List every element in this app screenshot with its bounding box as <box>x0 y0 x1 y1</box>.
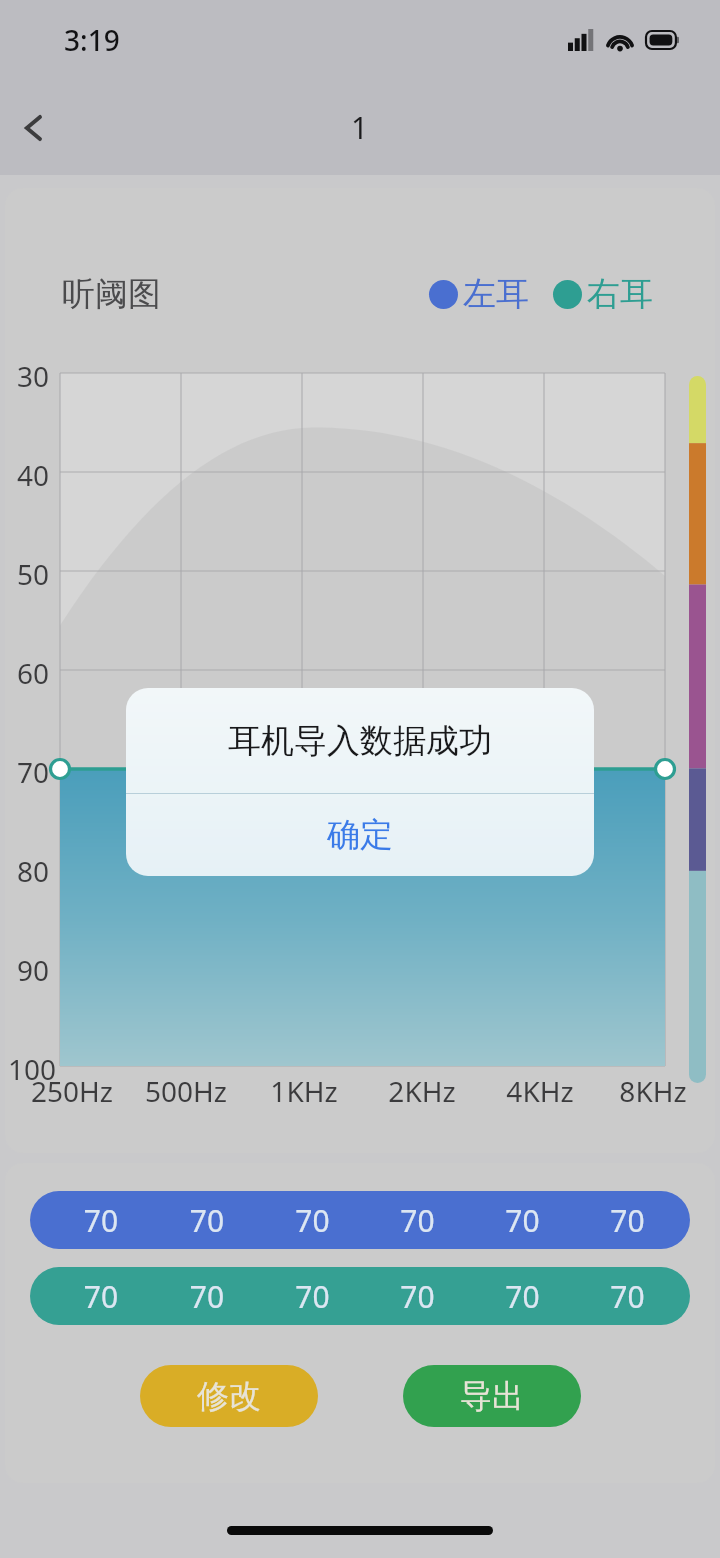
staticText: 4KHz <box>481 1072 599 1110</box>
button[interactable]: 左耳 <box>429 273 529 315</box>
staticText: 2KHz <box>363 1072 481 1110</box>
staticText: 40 <box>17 456 50 494</box>
staticText: 50 <box>17 555 50 593</box>
staticText: 70 <box>17 753 50 791</box>
staticText: 修改 <box>197 1376 261 1416</box>
staticText: 60 <box>17 654 50 692</box>
button[interactable]: 70 <box>30 1191 690 1249</box>
button[interactable]: 确定 <box>126 794 594 876</box>
staticText: 70 <box>575 1200 680 1241</box>
staticText: 导出 <box>460 1376 524 1416</box>
staticText: 8KHz <box>599 1072 707 1110</box>
staticText: 70 <box>575 1276 680 1317</box>
staticText: 3:19 <box>64 21 120 59</box>
staticText: 耳机导入数据成功 <box>228 720 492 762</box>
staticText: 右耳 <box>587 273 653 315</box>
staticText: 听阈图 <box>62 273 161 315</box>
staticText: 100 <box>8 1050 57 1088</box>
staticText: 30 <box>17 357 50 395</box>
button[interactable]: 70 <box>30 1267 690 1325</box>
staticText: 1 <box>351 107 369 148</box>
staticText: 250Hz <box>17 1072 127 1110</box>
staticText: 1KHz <box>245 1072 363 1110</box>
staticText: 70 <box>365 1200 470 1241</box>
staticText: 70 <box>365 1276 470 1317</box>
button[interactable]: Back <box>8 102 60 154</box>
staticText: 80 <box>17 852 50 890</box>
button[interactable]: 右耳 <box>553 273 653 315</box>
staticText: 70 <box>470 1276 575 1317</box>
staticText: 70 <box>48 1200 154 1241</box>
button[interactable]: 修改 <box>140 1365 318 1427</box>
staticText: 70 <box>154 1200 260 1241</box>
staticText: 90 <box>17 951 50 989</box>
staticText: 左耳 <box>463 273 529 315</box>
staticText: 70 <box>48 1276 154 1317</box>
staticText: 70 <box>470 1200 575 1241</box>
staticText: 70 <box>260 1200 365 1241</box>
staticText: 确定 <box>327 814 393 856</box>
button[interactable]: 导出 <box>403 1365 581 1427</box>
staticText: 70 <box>260 1276 365 1317</box>
staticText: 500Hz <box>127 1072 245 1110</box>
staticText: 70 <box>154 1276 260 1317</box>
